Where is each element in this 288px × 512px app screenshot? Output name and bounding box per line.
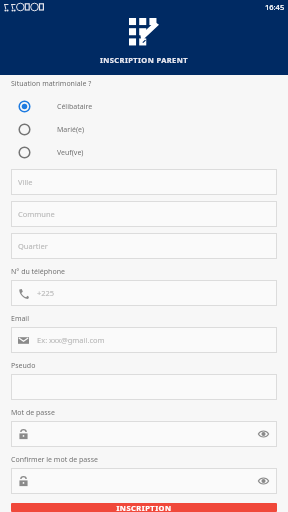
button[interactable]: Ex: xxx@gmail.com [11, 327, 277, 353]
button[interactable]: Célibataire [11, 95, 277, 118]
staticText: Ex: xxx@gmail.com [37, 335, 105, 345]
staticText: Veuf(ve) [57, 148, 84, 158]
staticText: Ville [18, 177, 33, 187]
button[interactable] [11, 374, 277, 400]
button[interactable]: +225 [11, 280, 277, 306]
staticText: Commune [18, 209, 55, 219]
staticText: Email [11, 314, 29, 324]
staticText: Confirmer le mot de passe [11, 455, 98, 465]
staticText: Situation matrimoniale ? [11, 79, 92, 89]
button[interactable]: Quartier [11, 233, 277, 259]
button[interactable]: Ville [11, 169, 277, 195]
button[interactable]: Afficher le mot de passe [11, 468, 277, 494]
staticText: +225 [37, 288, 55, 298]
staticText: Célibataire [57, 102, 93, 112]
staticText: N° du téléphone [11, 267, 65, 277]
button[interactable]: Afficher le mot de passe [256, 474, 270, 488]
staticText: Marié(e) [57, 125, 85, 135]
button[interactable]: INSCRIPTION [11, 503, 277, 512]
staticText: 16:45 [265, 2, 285, 12]
staticText: Pseudo [11, 361, 36, 371]
button[interactable]: Commune [11, 201, 277, 227]
button[interactable]: Afficher le mot de passe [256, 427, 270, 441]
button[interactable]: Veuf(ve) [11, 141, 277, 164]
staticText: INSCRIPTION PARENT [100, 55, 188, 65]
button[interactable]: Marié(e) [11, 118, 277, 141]
staticText: Quartier [18, 241, 48, 251]
staticText: Mot de passe [11, 408, 55, 418]
button[interactable]: Afficher le mot de passe [11, 421, 277, 447]
staticText: INSCRIPTION [116, 503, 172, 512]
